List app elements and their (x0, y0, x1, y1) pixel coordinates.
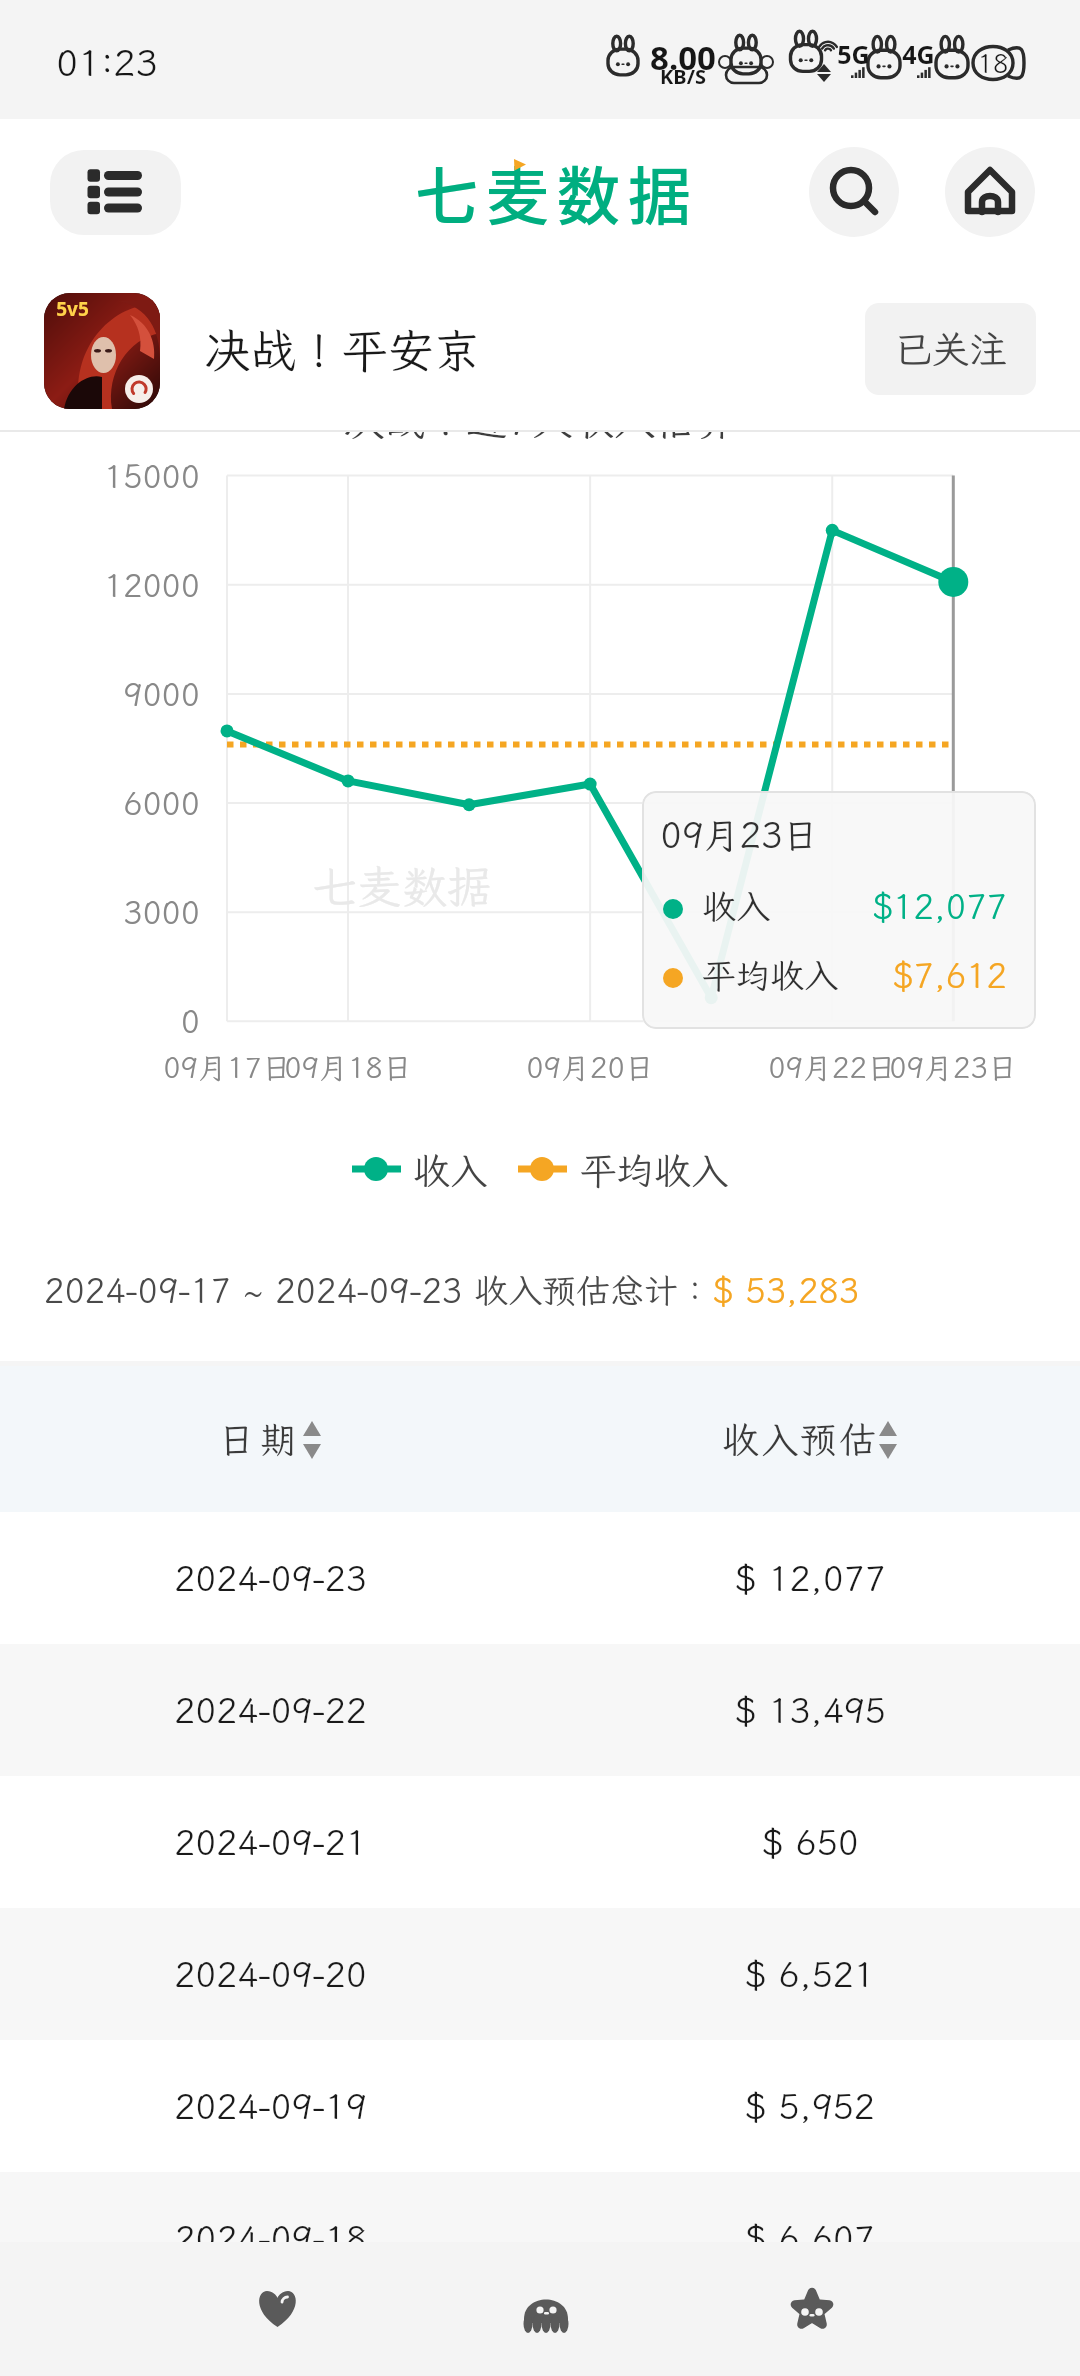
staticText: 6000 (123, 782, 200, 824)
button[interactable]: 2024-09-23 (0, 1512, 1080, 1644)
staticText: 七麦数据 (415, 146, 699, 230)
staticText: 9000 (123, 673, 200, 715)
button[interactable]: 2024-09-21 (0, 1776, 1080, 1908)
staticText: 15000 (103, 455, 200, 497)
button[interactable]: Home (474, 2242, 618, 2376)
staticText: $ 53,283 (713, 1268, 860, 1313)
staticText: 5G (837, 37, 870, 71)
staticText: 收入预估 (722, 1415, 878, 1464)
staticText: $12,077 (872, 884, 1007, 929)
staticText: $ 6,521 (745, 1951, 875, 1997)
staticText: 2024-09-17 ~ 2024-09-23 收入预估总计： (44, 1268, 713, 1313)
button[interactable]: 已关注 (865, 303, 1036, 395)
staticText: 12000 (103, 564, 200, 606)
staticText: $ 12,077 (735, 1555, 886, 1601)
staticText: $ 13,495 (735, 1687, 886, 1733)
button[interactable]: 2024-09-19 (0, 2040, 1080, 2172)
button[interactable]: Home (945, 147, 1035, 237)
staticText: 日期 (218, 1415, 302, 1464)
staticText: 18 (977, 46, 1009, 80)
staticText: KB/S (660, 63, 706, 90)
staticText: 已关注 (893, 324, 1008, 374)
staticText: 2024-09-21 (174, 1819, 367, 1865)
staticText: 2024-09-19 (174, 2083, 367, 2129)
staticText: 8.00 (650, 35, 716, 80)
staticText: 2024-09-23 (174, 1555, 367, 1601)
staticText: 平均收入 (702, 953, 838, 998)
staticText: $ 650 (762, 1819, 859, 1865)
staticText: 5v5 (56, 296, 89, 322)
button[interactable]: 日期 (0, 1366, 540, 1512)
staticText: 收入 (413, 1146, 487, 1195)
button[interactable]: Search (809, 147, 899, 237)
staticText: 0 (180, 1000, 200, 1042)
staticText: 09月20日 (526, 1048, 654, 1086)
staticText: 4G (902, 37, 935, 71)
staticText: $ 5,952 (745, 2083, 875, 2129)
staticText: 09月23日 (889, 1048, 1017, 1086)
staticText: 决战！平安京 (204, 320, 480, 380)
staticText: 平均收入 (580, 1146, 728, 1195)
staticText: 09月23日 (660, 811, 819, 858)
button[interactable]: 2024-09-20 (0, 1908, 1080, 2040)
button[interactable]: Back (206, 2242, 350, 2376)
staticText: 七麦数据 (312, 857, 493, 911)
staticText: 决战！近7天收入估算 (343, 393, 737, 447)
button[interactable]: 5v5 (44, 293, 160, 409)
button[interactable]: Recents (740, 2242, 884, 2376)
staticText: 01:23 (56, 38, 158, 86)
staticText: $7,612 (893, 953, 1007, 998)
button[interactable]: 2024-09-22 (0, 1644, 1080, 1776)
staticText: 09月22日 (768, 1048, 896, 1086)
staticText: $ 6,607 (745, 2215, 875, 2261)
staticText: 09月17日 (163, 1048, 291, 1086)
staticText: 2024-09-22 (174, 1687, 367, 1733)
staticText: 2024-09-18 (174, 2215, 367, 2261)
staticText: 收入 (702, 884, 770, 929)
staticText: 2024-09-20 (174, 1951, 367, 1997)
button[interactable]: 2024-09-18 (0, 2172, 1080, 2304)
button[interactable]: Menu (50, 150, 181, 235)
button[interactable]: 收入预估 (540, 1366, 1080, 1512)
staticText: 09月18日 (284, 1048, 412, 1086)
staticText: 3000 (123, 891, 200, 933)
